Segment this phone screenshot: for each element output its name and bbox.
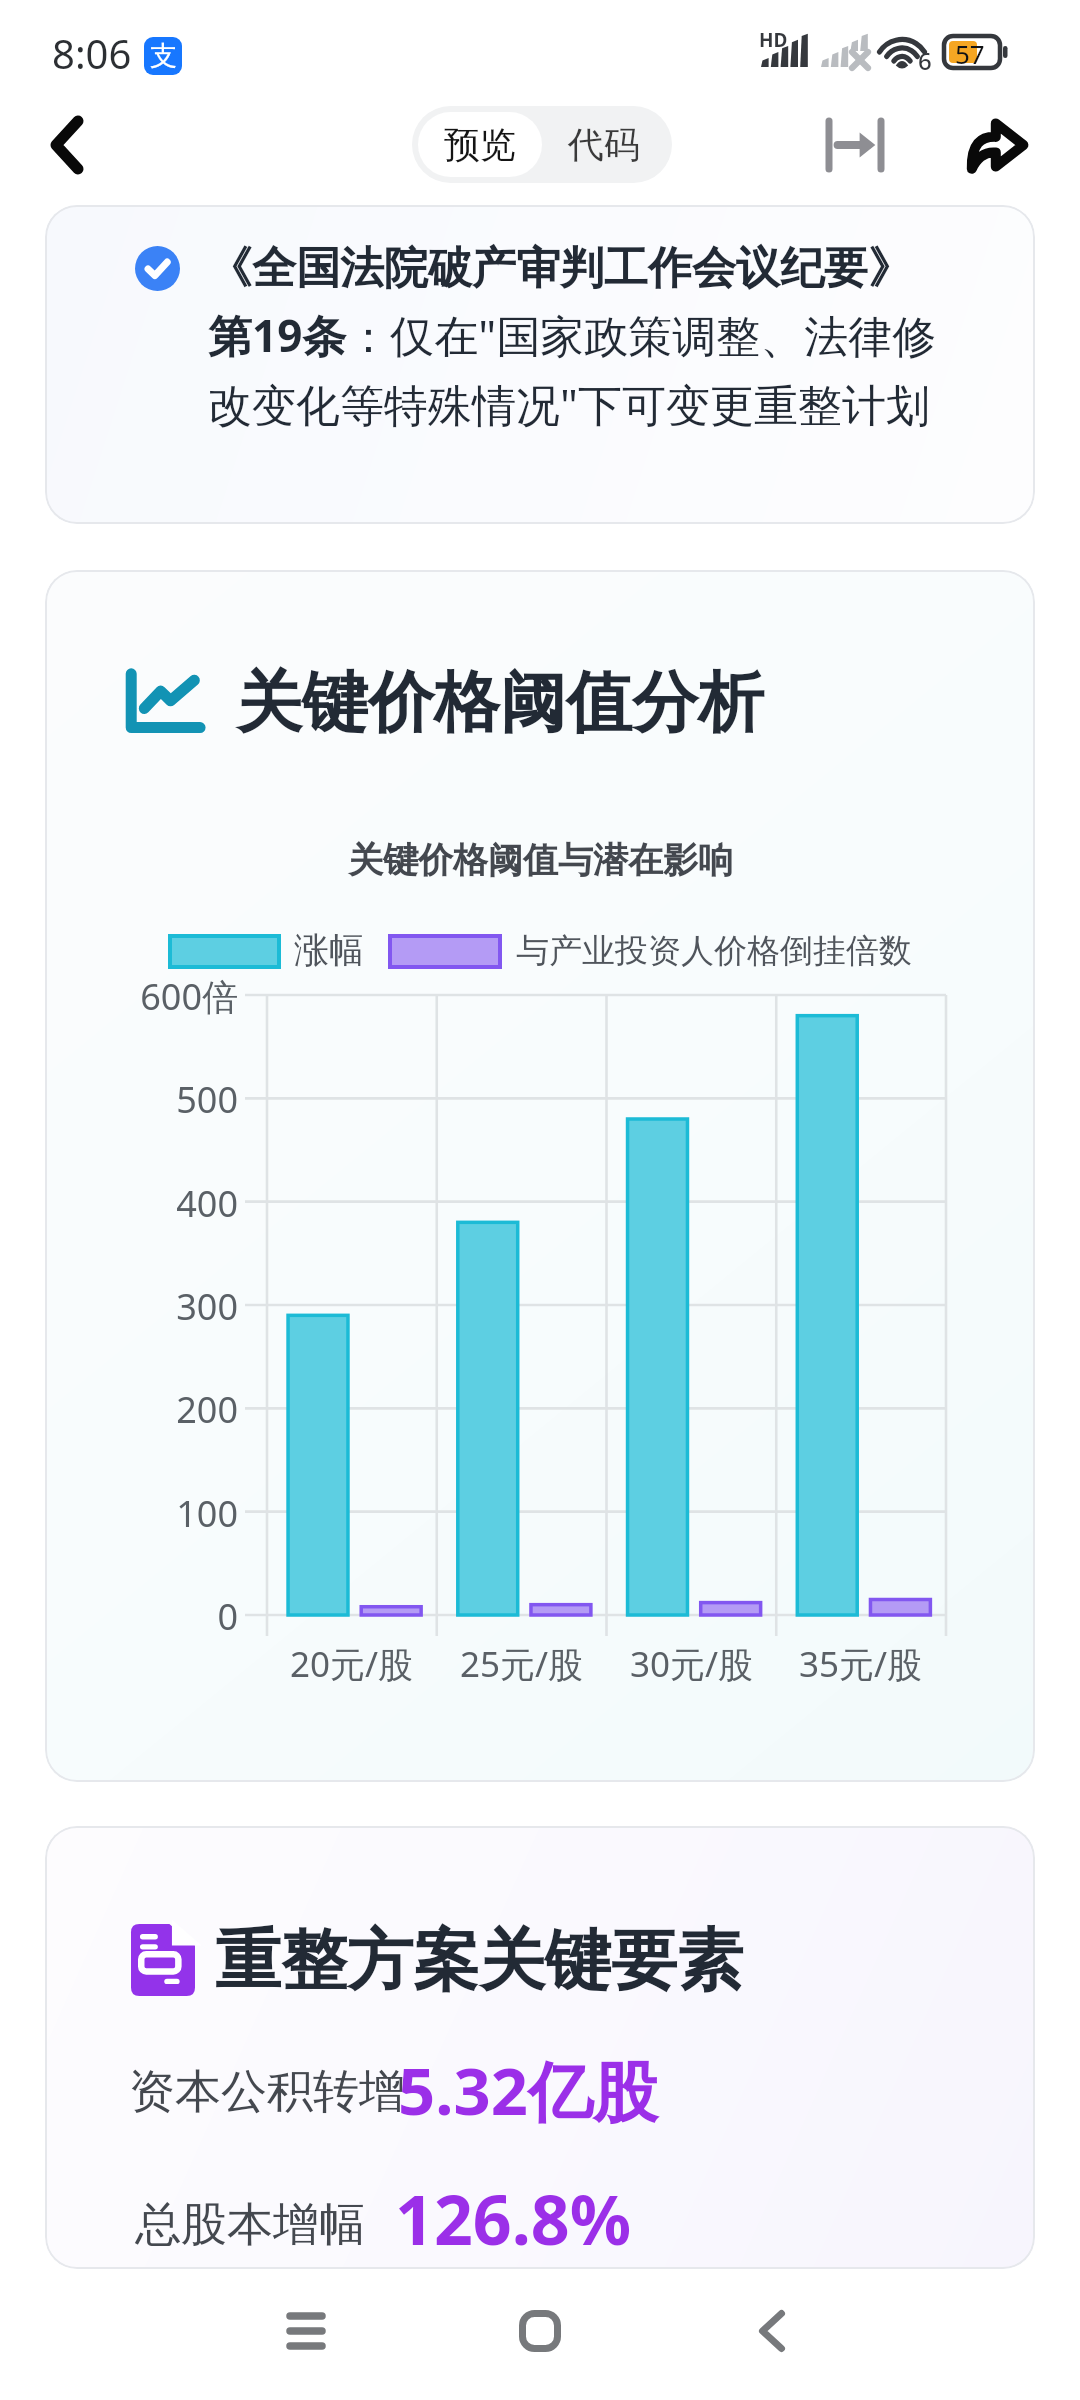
- staticText: 涨幅: [294, 928, 364, 972]
- staticText: 关键价格阈值分析: [236, 661, 764, 744]
- button[interactable]: Share: [952, 90, 1042, 200]
- staticText: 《全国法院破产审判工作会议纪要》 第19条：仅在"国家政策调整、法律修 改变化等…: [208, 241, 937, 434]
- staticText: 100: [47, 1489, 238, 1538]
- button[interactable]: Back: [22, 90, 112, 200]
- staticText: 重整方案关键要素: [215, 1919, 743, 2002]
- staticText: 126.8%: [395, 2172, 632, 2265]
- button[interactable]: 《全国法院破产审判工作会议纪要》 第19条：仅在"国家政策调整、法律修 改变化等…: [45, 205, 1035, 524]
- staticText: 300: [47, 1282, 238, 1331]
- staticText: HD: [759, 27, 788, 53]
- button[interactable]: Recent apps: [246, 2271, 366, 2391]
- staticText: 与产业投资人价格倒挂倍数: [516, 930, 912, 972]
- staticText: 200: [47, 1385, 238, 1434]
- staticText: 500: [47, 1075, 238, 1124]
- staticText: 预览: [444, 122, 516, 167]
- staticText: 代码: [568, 122, 640, 167]
- staticText: 8:06: [52, 26, 132, 80]
- button[interactable]: Home: [480, 2271, 600, 2391]
- staticText: 5.32亿股: [398, 2046, 658, 2135]
- staticText: 35元/股: [799, 1640, 923, 1688]
- staticText: 支: [150, 39, 177, 73]
- staticText: 400: [47, 1179, 238, 1228]
- staticText: 关键价格阈值与潜在影响: [348, 838, 733, 882]
- staticText: 30元/股: [630, 1640, 754, 1688]
- staticText: 25元/股: [460, 1640, 584, 1688]
- button[interactable]: Back: [712, 2271, 832, 2391]
- staticText: 600倍: [47, 972, 238, 1021]
- staticText: 57: [955, 36, 985, 71]
- button[interactable]: 预览: [418, 112, 542, 177]
- staticText: 0: [47, 1592, 238, 1641]
- button[interactable]: 代码: [542, 112, 666, 177]
- staticText: 20元/股: [290, 1640, 414, 1688]
- staticText: 资本公积转增: [129, 2063, 405, 2121]
- button[interactable]: Fit width: [810, 90, 900, 200]
- staticText: 总股本增幅: [135, 2196, 365, 2254]
- staticText: 6: [918, 44, 932, 77]
